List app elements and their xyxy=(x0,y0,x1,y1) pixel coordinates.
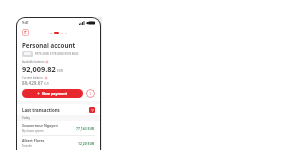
staticText: Transfer xyxy=(22,144,33,148)
staticText: Last transactions xyxy=(22,107,60,113)
staticText: FR76 3000 5778 0000 0078 8043 xyxy=(35,52,79,56)
staticText: 12,20 EUR xyxy=(78,141,95,146)
button[interactable]: Gouverneur Nguyen xyxy=(17,121,100,135)
button[interactable]: Filter transactions xyxy=(89,107,95,113)
staticText: 89,429.67 xyxy=(22,80,43,86)
button[interactable]: Albert Flores xyxy=(17,136,100,150)
button[interactable]: More options xyxy=(86,89,95,98)
staticText: Personal account xyxy=(22,41,76,49)
staticText: Available balance xyxy=(22,60,45,64)
staticText: EUR xyxy=(57,69,64,73)
button[interactable]: New payment xyxy=(22,89,83,98)
staticText: IBAN xyxy=(24,52,31,56)
staticText: Today xyxy=(22,116,30,120)
staticText: My classic system xyxy=(22,129,44,133)
staticText: EUR xyxy=(44,82,49,86)
staticText: 92,009.82 xyxy=(22,64,56,74)
staticText: Albert Flores xyxy=(22,138,45,143)
staticText: 9:41 xyxy=(22,20,29,25)
staticText: Current balance xyxy=(22,76,44,80)
staticText: 77,143 EUR xyxy=(76,126,95,131)
button[interactable]: Menu xyxy=(22,29,29,36)
staticText: Gouverneur Nguyen xyxy=(22,123,58,128)
staticText: New payment xyxy=(42,91,68,96)
